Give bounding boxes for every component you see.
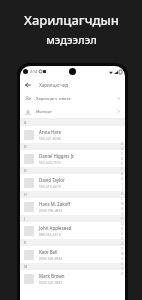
staticText: (555) 766-4823 xyxy=(39,208,63,213)
staticText: D xyxy=(24,144,27,149)
staticText: Харилцагчдын xyxy=(24,11,119,29)
staticText: A xyxy=(24,120,27,125)
staticText: R xyxy=(121,227,123,231)
staticText: U xyxy=(121,242,123,246)
button[interactable]: Back xyxy=(23,80,33,90)
staticText: J xyxy=(24,216,26,221)
button[interactable]: John Appleseed xyxy=(20,222,125,239)
staticText: C xyxy=(121,152,123,156)
staticText: Y xyxy=(121,262,123,266)
staticText: V xyxy=(121,247,123,251)
staticText: I xyxy=(122,182,123,186)
staticText: G xyxy=(121,172,123,176)
staticText: Z xyxy=(121,267,123,271)
staticText: 555-610-6679 xyxy=(39,184,61,189)
staticText: John Appleseed xyxy=(39,225,72,231)
staticText: H xyxy=(121,177,123,181)
staticText: 555-620-7672 xyxy=(39,160,61,165)
button[interactable]: Hans M. Zakoff xyxy=(20,198,125,215)
staticText: M xyxy=(121,202,124,206)
staticText: Anna Hare xyxy=(39,129,62,135)
staticText: H xyxy=(24,192,27,197)
staticText: мэдээлэл xyxy=(46,32,97,47)
staticText: Kate Bell xyxy=(39,249,58,255)
staticText: O xyxy=(121,212,124,216)
button[interactable]: Импорт xyxy=(20,105,125,118)
staticText: 555-521-8240 xyxy=(39,136,61,141)
button[interactable]: Kate Bell xyxy=(20,246,125,263)
staticText: P xyxy=(121,217,123,221)
staticText: Харилцагч нэмэх xyxy=(36,96,71,102)
staticText: (555) 564-8583 xyxy=(39,256,63,261)
staticText: # xyxy=(121,272,123,276)
staticText: (555) 321-9981 xyxy=(39,280,63,285)
button[interactable]: Alphabet index xyxy=(120,142,124,277)
staticText: M xyxy=(24,264,28,269)
staticText: S xyxy=(121,232,123,236)
staticText: Импорт xyxy=(36,109,52,115)
staticText: Daniel Higgins Jr. xyxy=(39,153,75,159)
button[interactable]: Anna Hare xyxy=(20,126,125,143)
button[interactable]: Харилцагч нэмэх xyxy=(20,92,125,105)
button[interactable]: Daniel Higgins Jr. xyxy=(20,150,125,167)
button[interactable]: Mark Brown xyxy=(20,270,125,287)
staticText: Hans M. Zakoff xyxy=(39,201,71,207)
staticText: Харилцагчид xyxy=(39,82,69,88)
button[interactable]: David Taylor xyxy=(20,174,125,191)
staticText: K xyxy=(121,192,123,196)
staticText: David Taylor xyxy=(39,177,65,183)
staticText: T xyxy=(121,237,123,241)
staticText: N xyxy=(121,207,123,211)
staticText: A xyxy=(121,142,123,146)
staticText: E xyxy=(121,162,123,166)
staticText: K xyxy=(24,240,27,245)
staticText: B xyxy=(121,147,123,151)
staticText: D xyxy=(121,157,123,161)
staticText: 3:14 xyxy=(30,69,37,74)
staticText: W xyxy=(121,252,124,256)
staticText: L xyxy=(121,197,123,201)
staticText: F xyxy=(121,167,123,171)
staticText: D xyxy=(24,168,27,173)
staticText: Mark Brown xyxy=(39,273,65,279)
staticText: X xyxy=(121,257,123,261)
staticText: Q xyxy=(121,222,124,226)
staticText: 888-555-5512 xyxy=(39,232,61,237)
